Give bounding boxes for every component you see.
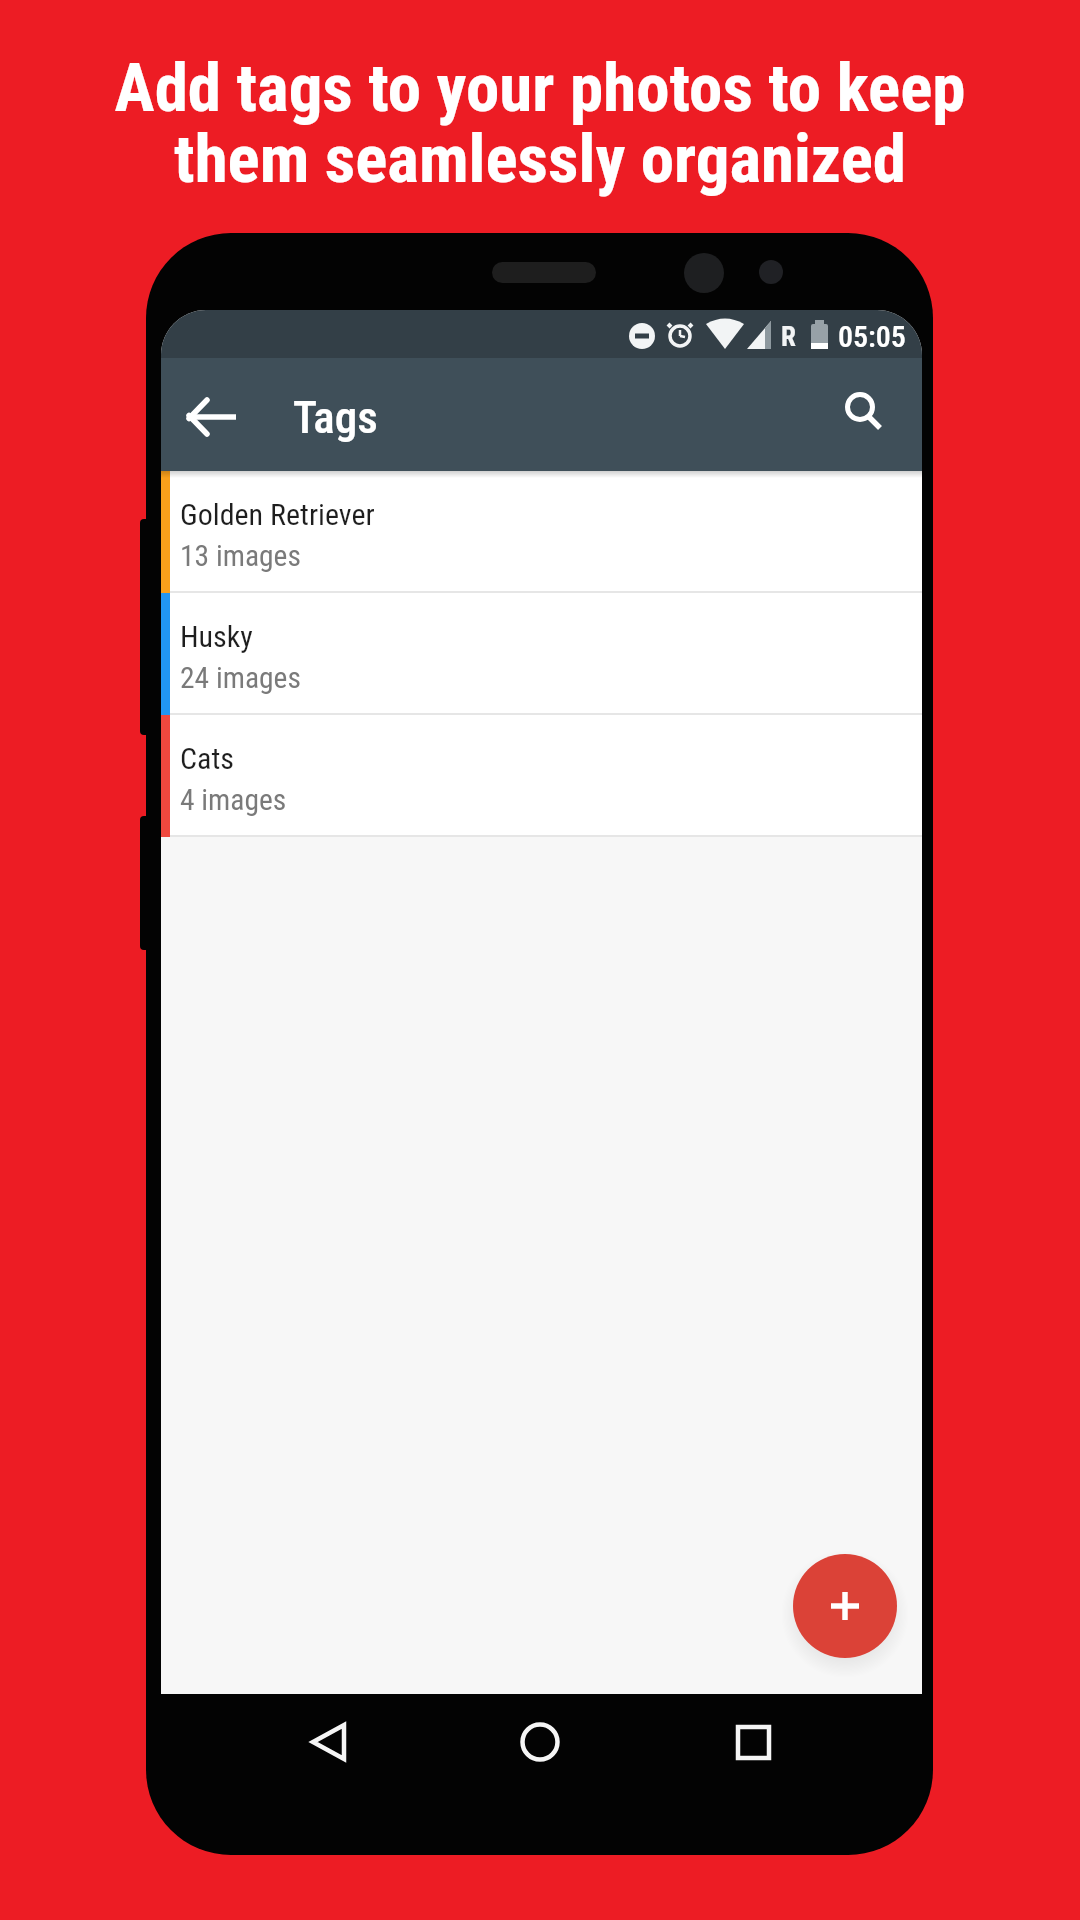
staticText: Cats (180, 741, 234, 776)
button[interactable] (793, 1554, 897, 1658)
staticText: 24 images (180, 661, 301, 696)
staticText: Golden Retriever (180, 497, 375, 532)
button[interactable] (704, 1692, 804, 1792)
button[interactable] (826, 374, 906, 454)
staticText: R (781, 321, 796, 353)
staticText: Add tags to your photos to keep them sea… (0, 49, 1080, 199)
staticText: 05:05 (838, 319, 906, 354)
button[interactable]: Cats (161, 715, 922, 837)
staticText: Tags (293, 391, 378, 444)
staticText: Husky (180, 619, 253, 654)
button[interactable] (490, 1692, 590, 1792)
button[interactable] (173, 377, 253, 457)
staticText: 4 images (180, 783, 287, 818)
staticText: 13 images (180, 539, 301, 574)
button[interactable]: Husky (161, 593, 922, 715)
button[interactable]: Golden Retriever (161, 471, 922, 593)
button[interactable] (278, 1692, 378, 1792)
